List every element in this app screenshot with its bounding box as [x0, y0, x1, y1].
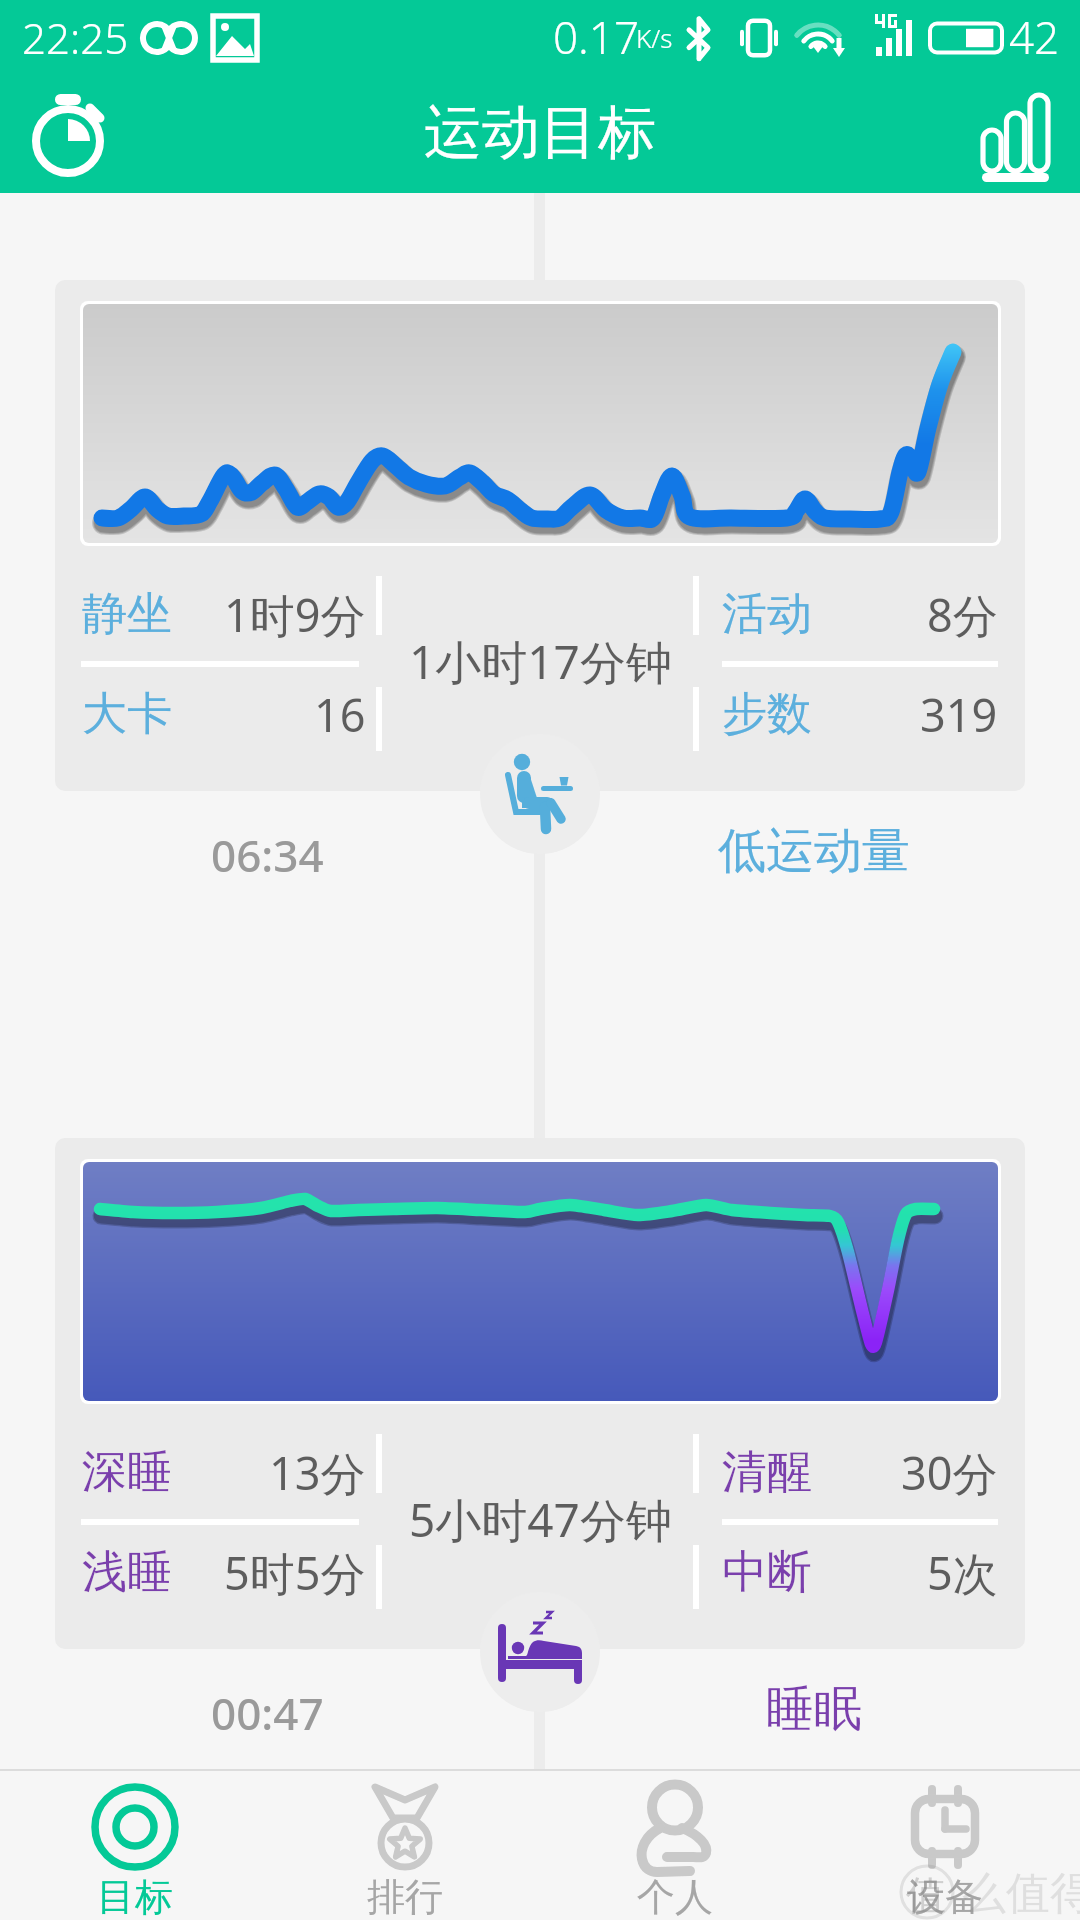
staticText: 319: [920, 684, 998, 745]
staticText: 设备: [907, 1873, 983, 1920]
button[interactable]: 深睡: [82, 1432, 366, 1512]
staticText: 值: [906, 1870, 946, 1920]
button[interactable]: Stopwatch: [22, 97, 108, 183]
staticText: 排行: [367, 1873, 443, 1920]
button[interactable]: 静坐: [82, 574, 366, 654]
button[interactable]: 设备: [810, 1771, 1080, 1920]
button[interactable]: 大卡: [82, 674, 366, 754]
staticText: 个人: [637, 1873, 713, 1920]
button[interactable]: 清醒: [722, 1432, 998, 1512]
staticText: 步数: [722, 686, 812, 743]
button[interactable]: 活动: [722, 574, 998, 654]
staticText: 5时5分: [224, 1542, 366, 1603]
staticText: 目标: [97, 1873, 173, 1920]
button[interactable]: 排行: [270, 1771, 540, 1920]
staticText: 8分: [927, 584, 998, 645]
staticText: 1时9分: [224, 584, 366, 645]
staticText: 中断: [722, 1544, 812, 1601]
staticText: 0.17: [553, 7, 640, 67]
staticText: 大卡: [82, 686, 172, 743]
staticText: 00:47: [211, 1683, 324, 1743]
button[interactable]: 个人: [540, 1771, 810, 1920]
staticText: 22:25: [22, 9, 129, 66]
staticText: 5小时47分钟: [409, 1488, 672, 1551]
button[interactable]: 中断: [722, 1532, 998, 1612]
staticText: K/s: [636, 20, 673, 55]
staticText: 42: [1009, 7, 1060, 67]
staticText: 运动目标: [424, 96, 656, 169]
button[interactable]: Statistics: [972, 93, 1058, 179]
staticText: 深睡: [82, 1444, 172, 1501]
staticText: 低运动量: [718, 821, 910, 881]
staticText: 5次: [927, 1542, 998, 1603]
staticText: 静坐: [82, 586, 172, 643]
staticText: 浅睡: [82, 1544, 172, 1601]
staticText: 30分: [901, 1442, 998, 1503]
staticText: 06:34: [211, 825, 324, 885]
staticText: 睡眠: [766, 1679, 862, 1739]
staticText: 清醒: [722, 1444, 812, 1501]
staticText: 么值得买: [962, 1866, 1080, 1920]
staticText: 1小时17分钟: [409, 630, 672, 693]
button[interactable]: 步数: [722, 674, 998, 754]
staticText: 16: [314, 684, 366, 745]
staticText: 活动: [722, 586, 812, 643]
button[interactable]: 浅睡: [82, 1532, 366, 1612]
button[interactable]: 目标: [0, 1771, 270, 1920]
staticText: 13分: [269, 1442, 366, 1503]
